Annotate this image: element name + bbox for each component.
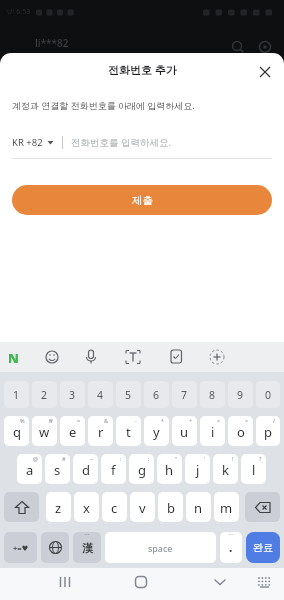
staticText: / — [273, 417, 276, 424]
staticText: s — [54, 461, 61, 479]
button[interactable] — [94, 568, 189, 600]
staticText: > — [245, 417, 249, 424]
button[interactable]: 6 — [144, 381, 169, 408]
button[interactable]: g — [129, 454, 154, 484]
button[interactable]: 3 — [60, 381, 85, 408]
button[interactable]: z — [46, 492, 71, 522]
staticText: ! — [232, 455, 234, 462]
staticText: 계정과 연결할 전화번호를 아래에 입력하세요. — [12, 99, 195, 111]
button[interactable]: c — [102, 492, 127, 522]
staticText: ··· — [85, 532, 90, 538]
staticText: d — [82, 461, 90, 479]
staticText: li***82 — [35, 36, 69, 50]
staticText: k — [222, 461, 229, 479]
staticText: 4 — [97, 388, 104, 402]
button[interactable]: r — [88, 416, 113, 446]
button[interactable]: y — [144, 416, 169, 446]
staticText: ? — [259, 455, 262, 462]
staticText: 8 — [209, 388, 216, 402]
button[interactable]: h — [157, 454, 182, 484]
staticText: n — [194, 499, 203, 517]
staticText: c — [111, 499, 118, 517]
staticText: p — [264, 423, 272, 441]
button[interactable]: s — [45, 454, 70, 484]
staticText: ' — [204, 455, 206, 462]
staticText: w — [39, 423, 50, 441]
staticText: + — [189, 417, 193, 424]
button[interactable]: e — [60, 416, 85, 446]
button[interactable]: 漢 — [73, 532, 101, 563]
button[interactable]: space — [105, 532, 216, 563]
button[interactable]: j — [185, 454, 210, 484]
staticText: " — [175, 455, 178, 462]
staticText: 0 — [265, 388, 272, 402]
button[interactable]: 1 — [4, 381, 29, 408]
staticText: r — [98, 423, 104, 441]
button[interactable]: t — [116, 416, 141, 446]
button[interactable]: x — [74, 492, 99, 522]
button[interactable]: . — [220, 532, 242, 563]
staticText: j — [196, 461, 200, 479]
button[interactable] — [189, 568, 284, 600]
button[interactable]: u — [172, 416, 197, 446]
button[interactable] — [41, 532, 69, 563]
button[interactable]: n — [186, 492, 211, 522]
button[interactable]: N — [8, 349, 19, 367]
button[interactable]: d — [73, 454, 98, 484]
button[interactable]: 7 — [172, 381, 197, 408]
button[interactable]: b — [158, 492, 183, 522]
staticText: ₩ — [49, 417, 53, 424]
staticText: 漢 — [82, 541, 93, 555]
button[interactable]: KR +82 — [12, 129, 272, 155]
button[interactable]: m — [214, 492, 239, 522]
staticText: m — [220, 499, 233, 517]
staticText: 완료 — [253, 541, 273, 554]
button[interactable]: o — [228, 416, 253, 446]
button[interactable]: +=♥ — [4, 532, 37, 563]
button[interactable]: 5 — [116, 381, 141, 408]
staticText: h — [165, 461, 174, 479]
staticText: @ — [33, 455, 38, 462]
staticText: v — [139, 499, 146, 517]
staticText: u — [180, 423, 189, 441]
button[interactable]: q — [4, 416, 29, 446]
button[interactable] — [254, 61, 276, 83]
button[interactable]: w — [32, 416, 57, 446]
staticText: 2 — [41, 388, 48, 402]
button[interactable] — [0, 568, 94, 600]
button[interactable]: 4 — [88, 381, 113, 408]
button[interactable]: v — [130, 492, 155, 522]
button[interactable]: a — [17, 454, 42, 484]
button[interactable] — [4, 492, 39, 522]
staticText: U⁺ 6:53 — [7, 7, 31, 17]
button[interactable]: 0 — [256, 381, 280, 408]
staticText: ~ — [90, 455, 94, 462]
button[interactable]: 9 — [228, 381, 253, 408]
button[interactable]: 8 — [200, 381, 225, 408]
button[interactable]: 제출 — [12, 185, 272, 215]
staticText: i — [211, 423, 215, 441]
staticText: 전화번호 추가 — [108, 62, 177, 77]
staticText: z — [55, 499, 62, 517]
staticText: 3 — [69, 388, 76, 402]
staticText: space — [148, 542, 173, 554]
button[interactable]: k — [213, 454, 238, 484]
staticText: b — [167, 499, 175, 517]
staticText: +=♥ — [13, 543, 29, 553]
button[interactable] — [245, 492, 280, 522]
button[interactable]: l — [241, 454, 266, 484]
staticText: # — [62, 455, 66, 462]
staticText: g — [138, 461, 146, 479]
button[interactable]: f — [101, 454, 126, 484]
button[interactable]: i — [200, 416, 225, 446]
staticText: ··· — [229, 532, 234, 538]
staticText: : — [120, 455, 122, 462]
button[interactable]: 완료 — [246, 532, 280, 563]
staticText: a — [26, 461, 34, 479]
staticText: y — [153, 423, 160, 441]
staticText: l — [252, 461, 256, 479]
button[interactable]: p — [256, 416, 280, 446]
staticText: 6 — [153, 388, 160, 402]
button[interactable]: 2 — [32, 381, 57, 408]
staticText: - — [135, 417, 137, 424]
